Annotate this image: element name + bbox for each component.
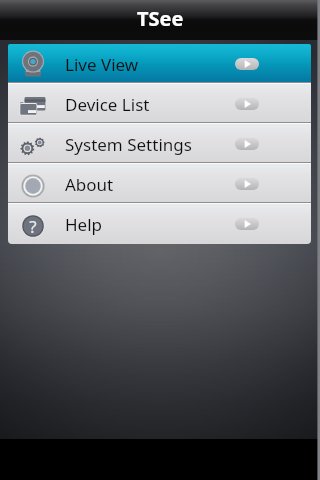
staticText: About xyxy=(65,173,114,196)
button[interactable]: Open xyxy=(235,58,259,70)
staticText: Live View xyxy=(65,53,139,76)
button[interactable]: Open xyxy=(235,178,259,190)
staticText: System Settings xyxy=(65,133,192,156)
staticText: Device List xyxy=(65,93,150,116)
button[interactable]: ? xyxy=(8,204,311,244)
staticText: Help xyxy=(65,213,103,236)
staticText: ? xyxy=(29,215,37,238)
staticText: TSee xyxy=(137,5,184,32)
button[interactable]: Device List xyxy=(8,84,311,124)
button[interactable]: System Settings xyxy=(8,124,311,164)
button[interactable]: Open xyxy=(235,138,259,150)
button[interactable]: Open xyxy=(235,98,259,110)
button[interactable]: Open xyxy=(235,218,259,230)
button[interactable]: About xyxy=(8,164,311,204)
button[interactable]: Live View xyxy=(8,44,311,84)
